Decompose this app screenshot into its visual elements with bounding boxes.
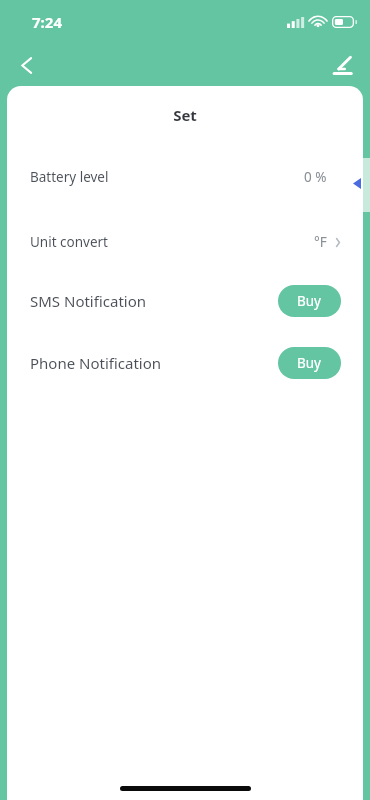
staticText: 0 % bbox=[304, 168, 327, 186]
staticText: Phone Notification bbox=[30, 353, 162, 373]
button[interactable]: Back bbox=[4, 44, 48, 86]
staticText: Battery level bbox=[30, 168, 109, 186]
button[interactable]: Battery level bbox=[7, 162, 363, 192]
button[interactable]: Edit bbox=[320, 44, 364, 86]
staticText: SMS Notification bbox=[30, 291, 147, 311]
button[interactable]: Unit convert bbox=[7, 227, 363, 257]
staticText: Buy bbox=[297, 292, 322, 310]
staticText: Set bbox=[7, 105, 363, 125]
button[interactable]: Buy bbox=[278, 347, 341, 379]
staticText: °F bbox=[314, 233, 327, 251]
staticText: 7:24 bbox=[32, 12, 62, 32]
staticText: Unit convert bbox=[30, 233, 108, 251]
button[interactable]: Buy bbox=[278, 285, 341, 317]
staticText: Buy bbox=[297, 354, 322, 372]
